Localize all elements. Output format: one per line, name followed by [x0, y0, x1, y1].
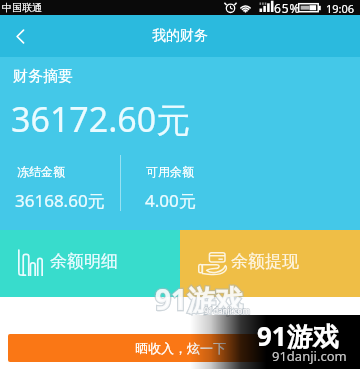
staticText: 65%	[274, 0, 301, 15]
staticText: 财务摘要	[13, 67, 73, 86]
staticText: 36168.60元	[15, 189, 105, 212]
staticText: 91游戏	[257, 318, 339, 354]
staticText: 4.00元	[145, 189, 196, 212]
staticText: 晒收入，炫一下	[135, 340, 226, 356]
staticText: 余额明细	[50, 251, 118, 272]
staticText: 91danji.com	[204, 305, 250, 316]
staticText: 91游戏	[155, 280, 244, 318]
button[interactable]: 余额提现	[180, 230, 360, 297]
staticText: 余额提现	[231, 251, 299, 272]
staticText: 91danji.com	[272, 347, 347, 365]
staticText: 19:06	[326, 1, 355, 16]
staticText: 36172.60元	[11, 96, 191, 142]
staticText: 中国联通	[2, 1, 42, 14]
button[interactable]: 余额明细	[0, 230, 180, 297]
staticText: 可用余额	[146, 164, 194, 179]
staticText: 我的财务	[152, 27, 208, 45]
staticText: 91danji.com	[204, 305, 250, 316]
button[interactable]: 晒收入，炫一下	[8, 334, 352, 362]
button[interactable]: Back	[0, 16, 40, 56]
staticText: 91游戏	[155, 280, 244, 318]
staticText: 冻结金额	[17, 164, 65, 179]
